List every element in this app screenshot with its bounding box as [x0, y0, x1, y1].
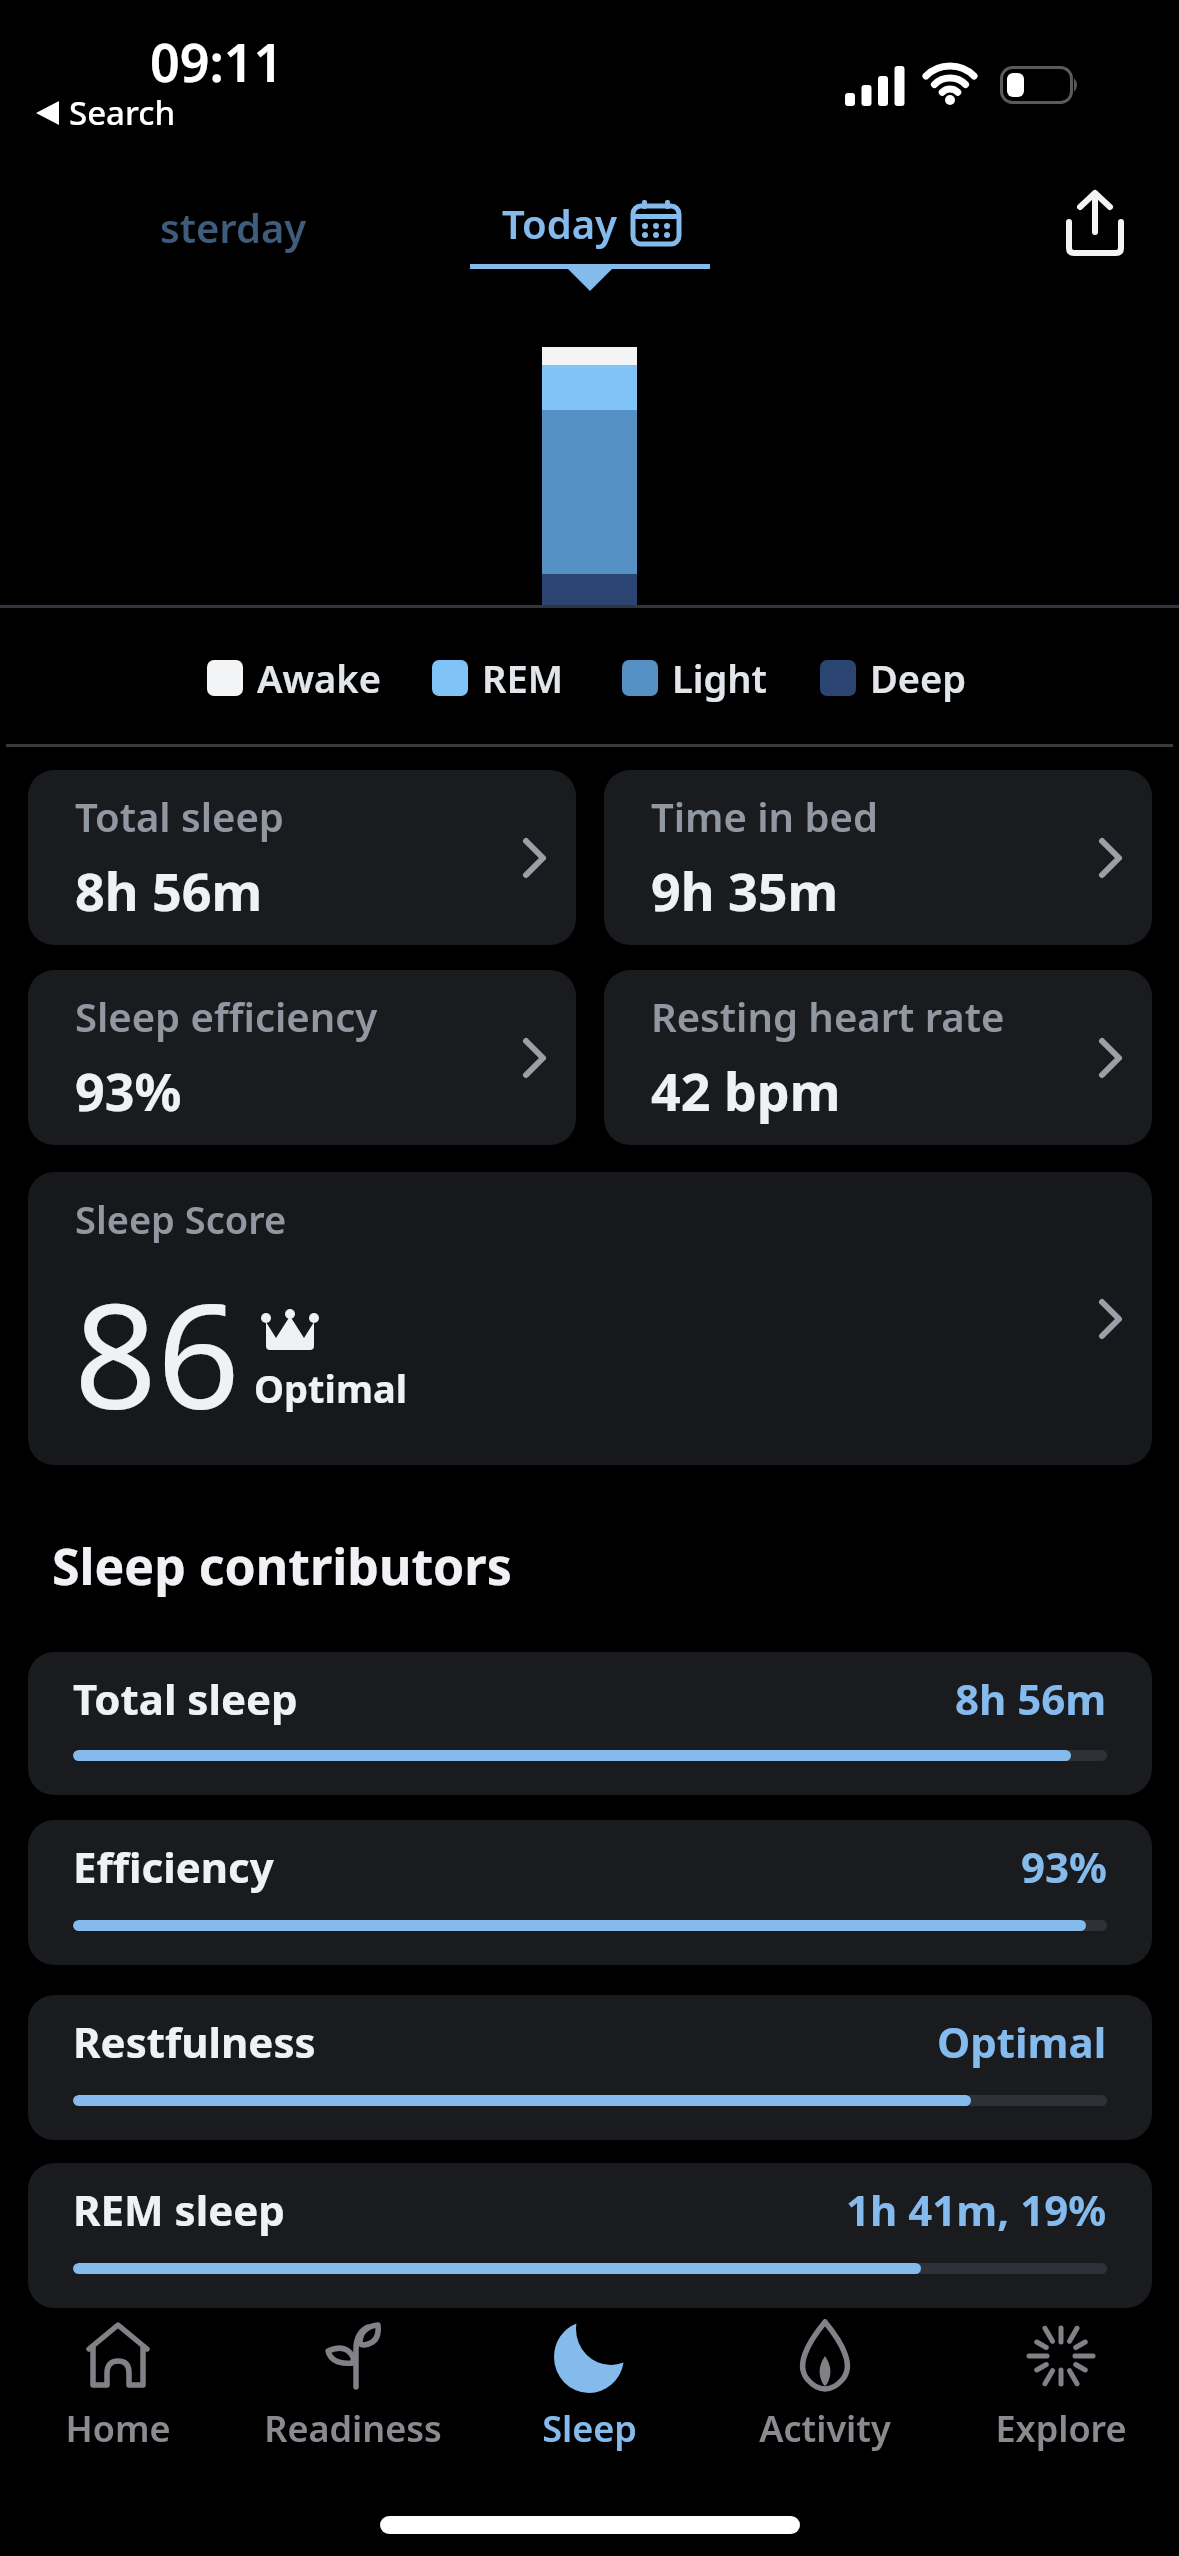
- staticText: Today: [502, 196, 617, 250]
- button[interactable]: Readiness: [235, 2318, 471, 2453]
- staticText: Resting heart rate: [651, 989, 1005, 1043]
- button[interactable]: Time in bed: [604, 770, 1152, 945]
- staticText: Sleep Score: [75, 1193, 287, 1245]
- staticText: Home: [65, 2404, 171, 2453]
- button[interactable]: Sleep: [471, 2318, 707, 2453]
- staticText: 8h 56m: [955, 1670, 1107, 1727]
- button[interactable]: sterday: [160, 200, 307, 254]
- button[interactable]: Efficiency: [28, 1820, 1152, 1965]
- staticText: Awake: [257, 652, 381, 704]
- staticText: Activity: [759, 2404, 891, 2453]
- staticText: 09:11: [150, 26, 284, 97]
- staticText: Total sleep: [75, 789, 284, 843]
- staticText: 1h 41m, 19%: [846, 2181, 1107, 2238]
- button[interactable]: Sleep Score: [28, 1172, 1152, 1465]
- staticText: 42 bpm: [651, 1055, 841, 1126]
- button[interactable]: Resting heart rate: [604, 970, 1152, 1145]
- staticText: REM sleep: [73, 2181, 285, 2238]
- staticText: 8h 56m: [75, 855, 263, 926]
- staticText: 9h 35m: [651, 855, 839, 926]
- staticText: Sleep: [542, 2404, 637, 2453]
- button[interactable]: Total sleep: [28, 1652, 1152, 1795]
- staticText: Time in bed: [651, 789, 878, 843]
- button[interactable]: Explore: [943, 2318, 1179, 2453]
- staticText: Sleep contributors: [52, 1532, 512, 1600]
- button[interactable]: Search: [36, 90, 176, 135]
- staticText: 86: [74, 1254, 240, 1451]
- staticText: Deep: [870, 652, 967, 704]
- staticText: Optimal: [254, 1362, 408, 1414]
- staticText: Sleep efficiency: [75, 989, 378, 1043]
- button[interactable]: Home: [0, 2318, 235, 2453]
- staticText: REM: [482, 652, 563, 704]
- button[interactable]: [1064, 190, 1126, 256]
- button[interactable]: Total sleep: [28, 770, 576, 945]
- button[interactable]: Sleep efficiency: [28, 970, 576, 1145]
- staticText: Search: [69, 90, 176, 135]
- staticText: 93%: [1021, 1838, 1107, 1895]
- button[interactable]: Restfulness: [28, 1995, 1152, 2140]
- button[interactable]: Activity: [707, 2318, 943, 2453]
- staticText: 93%: [75, 1055, 182, 1126]
- button[interactable]: Today: [502, 196, 679, 250]
- staticText: Optimal: [937, 2013, 1107, 2070]
- staticText: Explore: [995, 2404, 1127, 2453]
- button[interactable]: REM sleep: [28, 2163, 1152, 2308]
- staticText: Total sleep: [73, 1670, 298, 1727]
- staticText: Readiness: [264, 2404, 442, 2453]
- staticText: Restfulness: [73, 2013, 316, 2070]
- staticText: Light: [672, 652, 767, 704]
- staticText: Efficiency: [73, 1838, 274, 1895]
